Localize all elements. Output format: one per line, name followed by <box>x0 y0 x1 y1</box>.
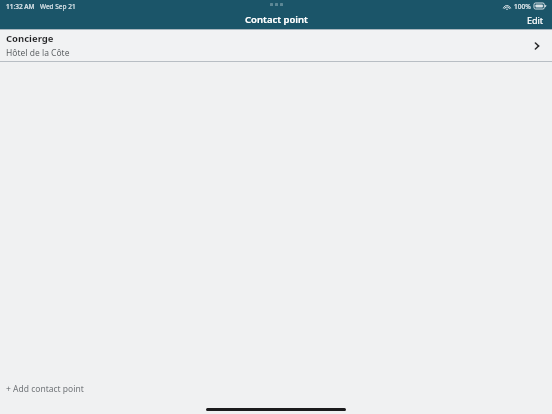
staticText: 11:32 AM <box>6 2 35 11</box>
button[interactable]: Concierge <box>0 30 552 61</box>
staticText: 100% <box>514 2 531 11</box>
staticText: Wed Sep 21 <box>40 2 76 11</box>
button[interactable]: + Add contact point <box>0 379 552 399</box>
staticText: Hôtel de la Côte <box>6 47 70 59</box>
staticText: Edit <box>527 14 544 26</box>
staticText: Contact point <box>245 13 308 26</box>
button[interactable]: Edit <box>519 12 552 28</box>
staticText: + Add contact point <box>6 383 84 395</box>
other: Open contact point <box>530 39 544 53</box>
staticText: Concierge <box>6 32 54 45</box>
